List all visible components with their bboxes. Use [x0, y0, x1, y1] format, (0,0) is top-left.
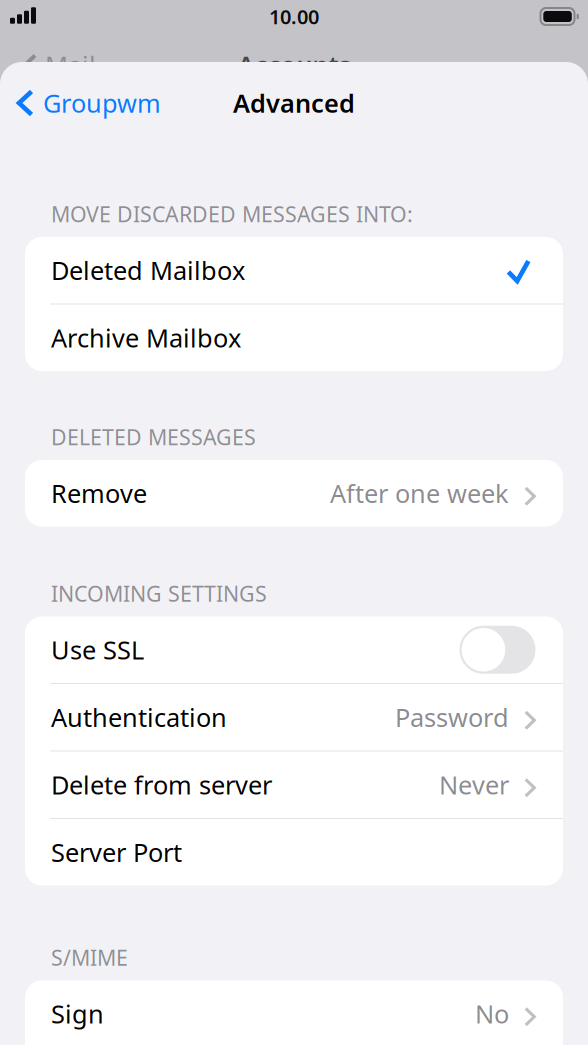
staticText: Server Port: [51, 835, 182, 869]
staticText: Use SSL: [51, 633, 144, 666]
staticText: Groupwm: [43, 86, 161, 120]
staticText: INCOMING SETTINGS: [51, 579, 267, 608]
staticText: Never: [439, 768, 509, 801]
staticText: No: [475, 997, 509, 1030]
button[interactable]: Delete from server: [25, 751, 563, 818]
staticText: S/MIME: [51, 943, 128, 972]
button[interactable]: Archive Mailbox: [25, 304, 563, 371]
staticText: Advanced: [233, 86, 355, 120]
staticText: Delete from server: [51, 768, 272, 801]
button[interactable]: Groupwm: [0, 80, 161, 126]
button[interactable]: Remove: [25, 460, 563, 526]
button[interactable]: Authentication: [25, 684, 563, 750]
staticText: Password: [395, 700, 509, 734]
staticText: Accounts: [237, 48, 350, 82]
staticText: After one week: [330, 476, 509, 510]
button[interactable]: Sign: [25, 980, 563, 1045]
staticText: 10.00: [269, 3, 319, 30]
staticText: MOVE DISCARDED MESSAGES INTO:: [51, 200, 413, 228]
button[interactable]: Server Port: [25, 819, 563, 885]
staticText: Authentication: [51, 700, 227, 734]
staticText: Sign: [51, 997, 104, 1030]
staticText: Archive Mailbox: [51, 321, 241, 354]
staticText: Mail: [45, 48, 96, 82]
staticText: DELETED MESSAGES: [51, 423, 256, 451]
staticText: Deleted Mailbox: [51, 253, 245, 287]
button[interactable]: Use SSL: [25, 616, 563, 683]
staticText: Remove: [51, 476, 147, 510]
button[interactable]: Deleted Mailbox: [25, 237, 563, 303]
